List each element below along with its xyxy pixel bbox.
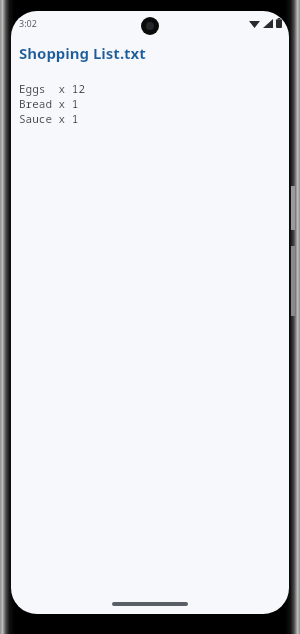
staticText: 3:02: [19, 17, 37, 29]
staticText: Shopping List.txt: [19, 43, 146, 63]
button[interactable]: Shopping List.txt: [11, 41, 289, 65]
staticText: Eggs x 12: [19, 81, 281, 96]
staticText: Bread x 1: [19, 96, 281, 111]
staticText: Sauce x 1: [19, 111, 281, 126]
